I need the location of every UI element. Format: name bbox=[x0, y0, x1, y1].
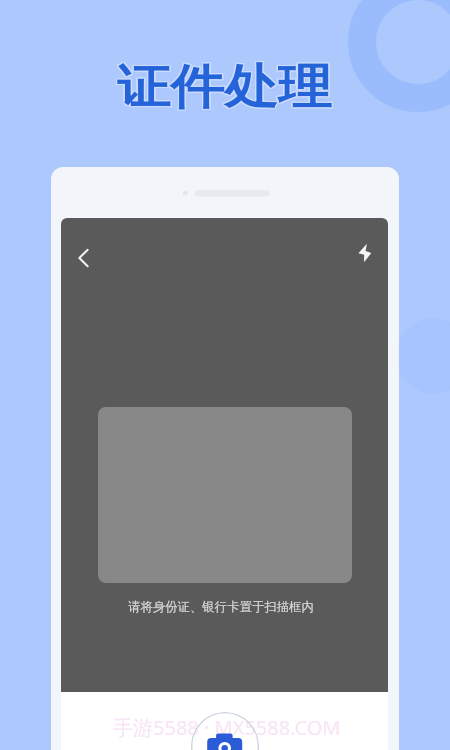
staticText: 证件处理 bbox=[118, 59, 332, 118]
staticText: 请将身份证、银行卡置于扫描框内 bbox=[128, 599, 314, 615]
staticText: 证件处理 bbox=[118, 58, 332, 117]
staticText: 证件处理 bbox=[116, 59, 330, 118]
button[interactable]: Flash bbox=[340, 226, 380, 266]
staticText: 证件处理 bbox=[116, 58, 330, 117]
button[interactable]: Back bbox=[62, 239, 104, 281]
staticText: 证件处理 bbox=[118, 57, 332, 116]
button[interactable]: Capture photo bbox=[191, 712, 259, 750]
staticText: 证件处理 bbox=[116, 57, 330, 116]
staticText: 证件处理 bbox=[117, 57, 331, 116]
staticText: 手游5588 · MX5588.COM bbox=[113, 714, 341, 741]
staticText: 证件处理 bbox=[117, 58, 331, 117]
staticText: 证件处理 bbox=[117, 59, 331, 118]
